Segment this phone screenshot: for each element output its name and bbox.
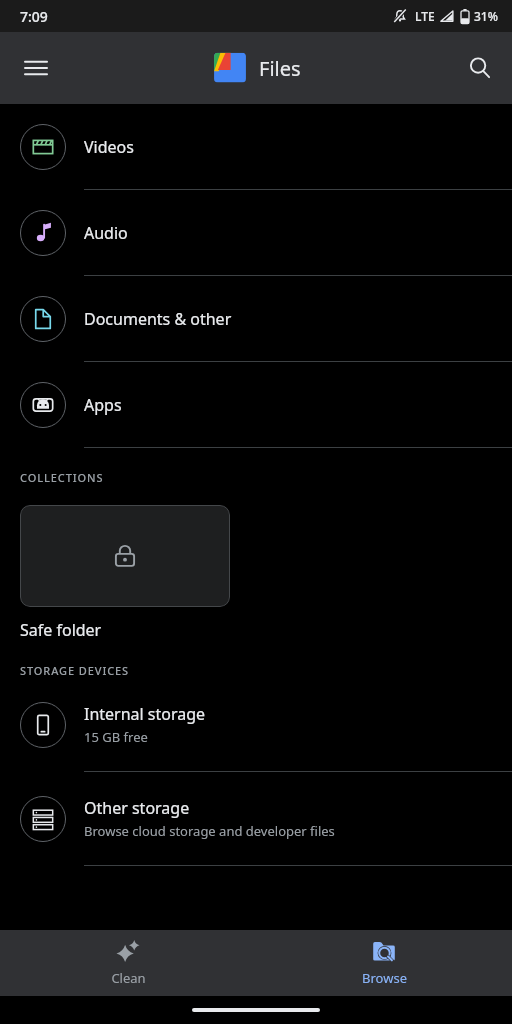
staticText: 7:09	[20, 7, 48, 26]
staticText: Videos	[84, 136, 134, 158]
staticText: STORAGE DEVICES	[20, 663, 130, 678]
staticText: LTE	[415, 8, 435, 24]
staticText: 15 GB free	[84, 728, 148, 746]
button[interactable]: Documents & other	[0, 276, 512, 362]
staticText: Browse	[362, 969, 407, 987]
staticText: 31%	[474, 8, 498, 24]
button[interactable]: Open navigation menu	[12, 44, 60, 92]
button[interactable]: Search	[456, 44, 504, 92]
button[interactable]: Videos	[0, 104, 512, 190]
staticText: Documents & other	[84, 308, 232, 330]
button[interactable]: Safe folder	[20, 505, 230, 641]
staticText: Files	[259, 55, 301, 82]
staticText: Apps	[84, 394, 122, 416]
button[interactable]: Browse	[256, 930, 512, 996]
button[interactable]: Audio	[0, 190, 512, 276]
button[interactable]: Other storage	[0, 772, 512, 866]
button[interactable]: Clean	[0, 930, 256, 996]
staticText: Safe folder	[20, 619, 102, 641]
staticText: Other storage	[84, 797, 190, 819]
staticText: Browse cloud storage and developer files	[84, 822, 335, 840]
staticText: COLLECTIONS	[20, 470, 104, 485]
staticText: Clean	[111, 969, 146, 987]
staticText: Audio	[84, 222, 128, 244]
button[interactable]: Internal storage	[0, 678, 512, 772]
staticText: Internal storage	[84, 703, 206, 725]
button[interactable]: Apps	[0, 362, 512, 448]
